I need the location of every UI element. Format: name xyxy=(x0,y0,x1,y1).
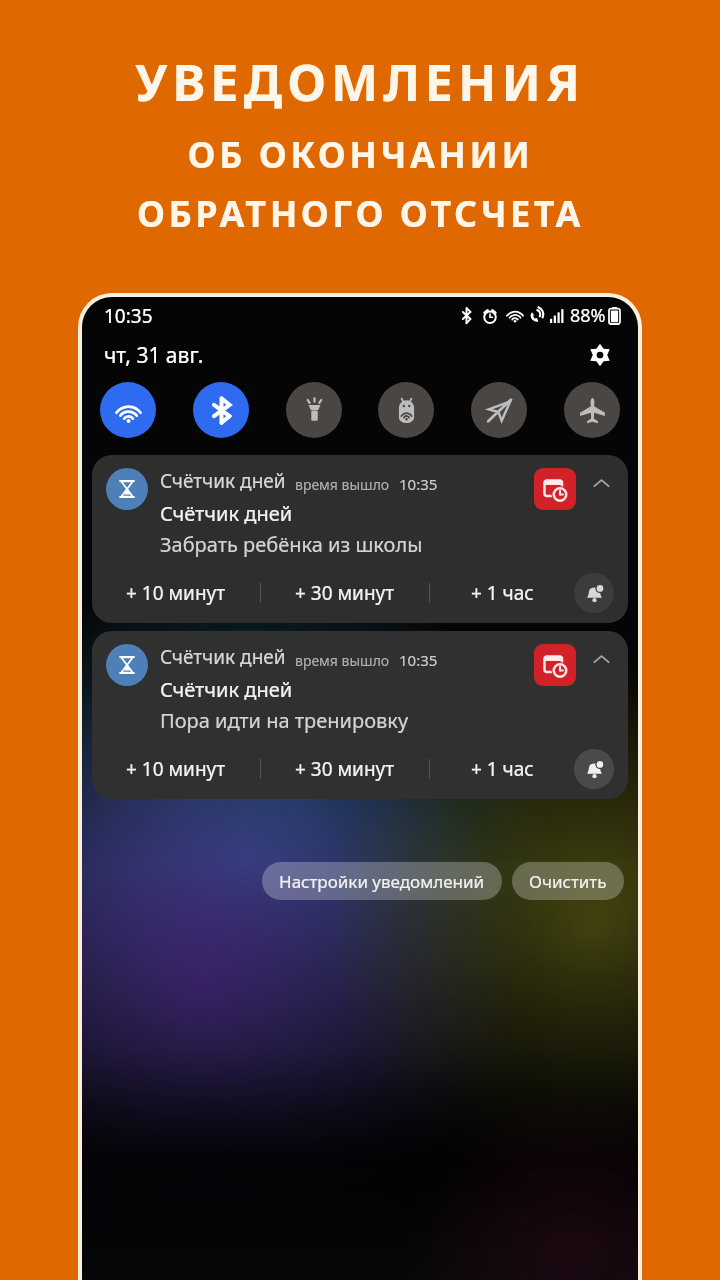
staticText: Счётчик дней xyxy=(160,644,286,670)
button[interactable]: Settings xyxy=(580,335,620,375)
button[interactable]: Collapse xyxy=(586,468,616,498)
staticText: Забрать ребёнка из школы xyxy=(160,531,423,558)
button[interactable]: Snooze xyxy=(574,749,614,789)
staticText: Счётчик дней xyxy=(160,468,286,494)
staticText: + 30 минут xyxy=(295,580,395,606)
staticText: 10:35 xyxy=(104,303,153,329)
button[interactable]: Настройки уведомлений xyxy=(262,862,502,900)
button[interactable]: Countdown app xyxy=(534,644,576,686)
button[interactable]: Nearby xyxy=(378,382,434,438)
button[interactable]: Countdown app xyxy=(534,468,576,510)
button[interactable]: + 30 минут xyxy=(261,743,429,795)
staticText: Очистить xyxy=(529,870,607,893)
button[interactable]: Bluetooth xyxy=(193,382,249,438)
button[interactable]: Data off xyxy=(471,382,527,438)
staticText: ОБ ОКОНЧАНИИ xyxy=(187,130,534,179)
staticText: + 30 минут xyxy=(295,756,395,782)
button[interactable]: Wi-Fi xyxy=(100,382,156,438)
staticText: время вышло xyxy=(295,475,390,494)
staticText: 10:35 xyxy=(399,474,438,494)
staticText: Настройки уведомлений xyxy=(279,870,485,893)
button[interactable]: Очистить xyxy=(512,862,624,900)
button[interactable]: Счётчик дней xyxy=(92,631,628,799)
staticText: 10:35 xyxy=(399,650,438,670)
staticText: + 1 час xyxy=(471,580,534,606)
button[interactable]: Collapse xyxy=(586,644,616,674)
staticText: Счётчик дней xyxy=(160,676,293,703)
button[interactable]: Snooze xyxy=(574,573,614,613)
button[interactable]: + 1 час xyxy=(430,743,574,795)
staticText: УВЕДОМЛЕНИЯ xyxy=(135,48,585,116)
button[interactable]: + 10 минут xyxy=(92,567,260,619)
staticText: + 10 минут xyxy=(126,580,226,606)
button[interactable]: Flashlight xyxy=(286,382,342,438)
button[interactable]: Airplane mode xyxy=(564,382,620,438)
staticText: ОБРАТНОГО ОТСЧЕТА xyxy=(137,189,584,238)
staticText: время вышло xyxy=(295,651,390,670)
staticText: Счётчик дней xyxy=(160,500,293,527)
button[interactable]: + 1 час xyxy=(430,567,574,619)
staticText: + 10 минут xyxy=(126,756,226,782)
button[interactable]: + 10 минут xyxy=(92,743,260,795)
button[interactable]: + 30 минут xyxy=(261,567,429,619)
staticText: чт, 31 авг. xyxy=(104,341,204,370)
staticText: + 1 час xyxy=(471,756,534,782)
button[interactable]: Счётчик дней xyxy=(92,455,628,623)
staticText: Пора идти на тренировку xyxy=(160,707,409,734)
staticText: 88% xyxy=(570,303,606,328)
